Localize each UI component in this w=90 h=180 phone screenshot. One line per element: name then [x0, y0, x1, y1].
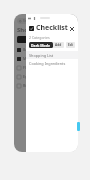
- staticText: Search: [23, 19, 33, 23]
- staticText: Cooking Ingredients: [29, 61, 66, 66]
- button[interactable]: Edit: [66, 42, 75, 48]
- button[interactable]: Close: [68, 25, 75, 32]
- staticText: 2 Categories: [29, 35, 50, 40]
- button[interactable]: Bananas: [14, 45, 78, 54]
- staticText: Add: [55, 43, 62, 47]
- staticText: Dark Mode: [31, 43, 51, 48]
- button[interactable]: Flour: [14, 63, 78, 72]
- button[interactable]: Dark Mode: [29, 42, 53, 48]
- button[interactable]: Side button: [77, 122, 80, 131]
- staticText: Shopping: [17, 26, 46, 34]
- staticText: Checklist: [36, 23, 68, 33]
- button[interactable]: Shopping List: [26, 51, 78, 59]
- staticText: Flour: [23, 65, 32, 70]
- staticText: Rice: [23, 83, 30, 88]
- staticText: Shopping List: [29, 53, 54, 58]
- button[interactable]: Eggs: [14, 72, 78, 81]
- button[interactable]: [17, 36, 75, 43]
- button[interactable]: Cooking Ingredients: [26, 59, 78, 67]
- button[interactable]: Add: [53, 42, 64, 48]
- staticText: Edit: [68, 43, 73, 47]
- button[interactable]: Search: [17, 18, 75, 24]
- button[interactable]: Milk: [14, 54, 78, 63]
- staticText: Eggs: [23, 74, 31, 79]
- staticText: Milk: [23, 56, 30, 61]
- staticText: Bananas: [23, 47, 38, 52]
- button[interactable]: Rice: [14, 81, 78, 90]
